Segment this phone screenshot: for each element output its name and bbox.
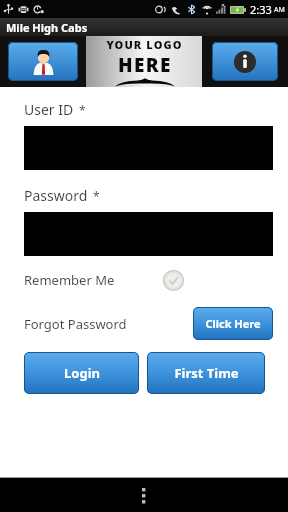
staticText: Mile High Cabs (6, 20, 88, 35)
button[interactable]: YOUR LOGO (86, 36, 202, 87)
button[interactable]: Click Here (193, 307, 273, 340)
button[interactable]: Remember Me (161, 268, 185, 292)
staticText: First Time (174, 364, 239, 382)
button[interactable]: First Time (147, 352, 265, 394)
staticText: HERE (118, 52, 172, 78)
staticText: * (79, 102, 86, 118)
staticText: Password (24, 186, 88, 205)
button[interactable]: Account (8, 42, 78, 81)
staticText: AM (274, 5, 285, 15)
staticText: Forgot Password (24, 315, 127, 333)
staticText: Remember Me (24, 271, 115, 289)
staticText: 2:33 (250, 2, 272, 17)
staticText: User ID (24, 100, 74, 119)
staticText: * (93, 188, 100, 204)
button[interactable]: Info (212, 42, 278, 81)
staticText: Click Here (205, 316, 261, 331)
staticText: YOUR LOGO (106, 37, 183, 52)
button[interactable]: Login (24, 352, 139, 394)
staticText: Login (64, 364, 100, 382)
button[interactable]: More options (129, 480, 159, 510)
